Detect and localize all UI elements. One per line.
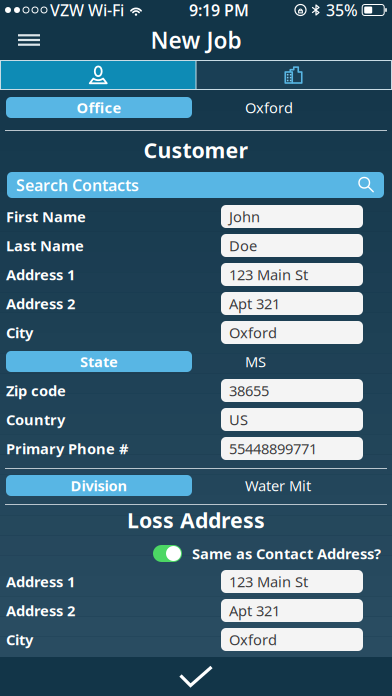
button[interactable]: John [221, 205, 363, 228]
staticText: Water Mit [245, 476, 311, 495]
button[interactable]: 55448899771 [221, 437, 363, 460]
staticText: US [229, 410, 248, 429]
button[interactable]: Division [6, 475, 192, 496]
staticText: 123 Main St [229, 265, 308, 284]
staticText: Oxford [229, 630, 277, 649]
button[interactable]: Doe [221, 234, 363, 257]
staticText: 9:19 PM [189, 0, 249, 21]
button[interactable]: Oxford [221, 628, 363, 651]
button[interactable]: Oxford [192, 96, 334, 119]
staticText: Oxford [245, 98, 293, 117]
staticText: Country [6, 410, 65, 429]
button[interactable]: Water Mit [192, 474, 334, 497]
button[interactable]: Apt 321 [221, 599, 363, 622]
button[interactable]: Office [6, 97, 192, 118]
button[interactable]: 123 Main St [221, 263, 363, 286]
button[interactable]: Company [196, 61, 391, 89]
staticText: Office [76, 98, 121, 117]
staticText: MS [245, 352, 266, 371]
staticText: Same as Contact Address? [192, 544, 381, 563]
staticText: Address 2 [6, 294, 75, 313]
button[interactable]: Oxford [221, 321, 363, 344]
button[interactable]: Apt 321 [221, 292, 363, 315]
button[interactable]: Search Contacts [7, 172, 384, 198]
staticText: First Name [6, 207, 86, 226]
staticText: Oxford [229, 323, 277, 342]
staticText: Zip code [6, 381, 66, 400]
staticText: Apt 321 [229, 294, 280, 313]
button[interactable]: State [6, 351, 192, 372]
button[interactable]: US [221, 408, 363, 431]
staticText: 38655 [229, 381, 269, 400]
staticText: 35% [326, 0, 358, 21]
staticText: Division [70, 476, 127, 495]
staticText: Apt 321 [229, 601, 280, 620]
staticText: 123 Main St [229, 572, 308, 591]
staticText: Address 1 [6, 265, 75, 284]
staticText: Loss Address [127, 506, 265, 534]
staticText: Search Contacts [16, 174, 139, 196]
button[interactable]: Menu [0, 21, 58, 59]
button[interactable]: Same as Contact Address [153, 545, 182, 562]
button[interactable]: 38655 [221, 379, 363, 402]
staticText: John [229, 207, 260, 226]
staticText: Primary Phone # [6, 439, 128, 458]
staticText: Last Name [6, 236, 84, 255]
staticText: 55448899771 [229, 439, 317, 458]
button[interactable]: Customer [1, 61, 195, 89]
staticText: Doe [229, 236, 257, 255]
staticText: City [6, 323, 33, 342]
staticText: VZW Wi-Fi [50, 0, 124, 21]
button[interactable]: 123 Main St [221, 570, 363, 593]
staticText: Address 2 [6, 601, 75, 620]
staticText: City [6, 630, 33, 649]
staticText: State [80, 352, 118, 371]
staticText: Customer [143, 136, 248, 164]
button[interactable]: Save [0, 657, 392, 696]
button[interactable]: MS [192, 350, 334, 373]
staticText: New Job [150, 25, 241, 55]
staticText: Address 1 [6, 572, 75, 591]
